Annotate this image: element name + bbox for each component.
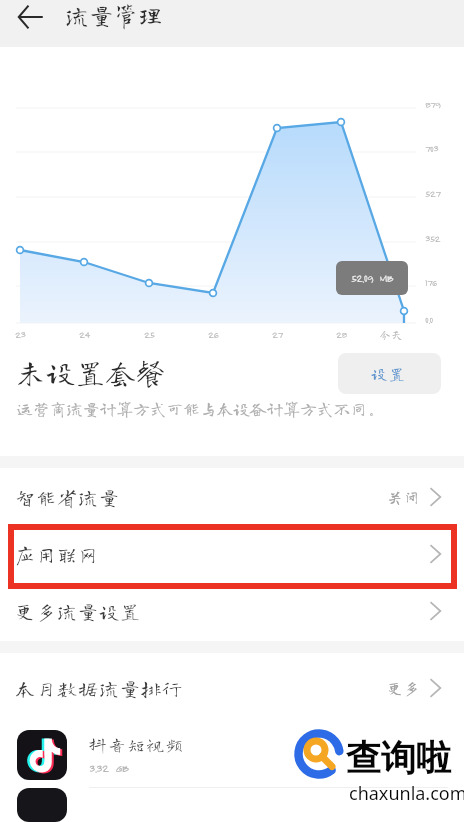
staticText: 抖音短视频 bbox=[89, 736, 185, 753]
staticText: 关闭 bbox=[387, 489, 421, 505]
staticText: chaxunla.com bbox=[349, 781, 464, 806]
staticText: 应用联网 bbox=[15, 544, 99, 564]
staticText: 智能省流量 bbox=[15, 487, 120, 507]
staticText: 本月数据流量排行 bbox=[15, 678, 183, 698]
staticText: 879 bbox=[425, 98, 441, 110]
button[interactable]: 抖音短视频 bbox=[0, 723, 464, 787]
staticText: 更多流量设置 bbox=[15, 601, 141, 621]
staticText: 25 bbox=[144, 328, 155, 340]
staticText: 23 bbox=[15, 328, 26, 340]
staticText: 52.09 MB bbox=[351, 272, 394, 285]
button[interactable]: 本月数据流量排行 bbox=[0, 653, 464, 723]
staticText: 24 bbox=[79, 328, 90, 340]
staticText: 更多 bbox=[387, 680, 421, 696]
staticText: 设置 bbox=[371, 366, 408, 382]
staticText: 703 bbox=[425, 142, 439, 154]
staticText: 0.0 bbox=[425, 313, 433, 325]
staticText: 3.32 GB bbox=[89, 761, 129, 775]
staticText: 28 bbox=[336, 328, 347, 340]
staticText: 176 bbox=[425, 276, 437, 288]
staticText: 未设置套餐 bbox=[16, 357, 167, 386]
staticText: 查询啦 bbox=[346, 736, 451, 780]
staticText: 27 bbox=[272, 328, 283, 340]
button[interactable]: Back bbox=[6, 0, 54, 34]
staticText: 今天 bbox=[379, 328, 404, 340]
staticText: 流量管理 bbox=[65, 3, 163, 27]
button[interactable]: 更多流量设置 bbox=[0, 582, 464, 639]
staticText: 26 bbox=[208, 328, 219, 340]
staticText: 运营商流量计算方式可能与本设备计算方式不同。 bbox=[16, 400, 384, 417]
button[interactable]: 应用联网 bbox=[0, 525, 464, 582]
button[interactable]: 设置 bbox=[338, 353, 441, 394]
staticText: 527 bbox=[425, 187, 441, 199]
button[interactable]: 智能省流量 bbox=[0, 468, 464, 525]
button[interactable] bbox=[0, 788, 464, 822]
staticText: 352 bbox=[425, 232, 441, 244]
